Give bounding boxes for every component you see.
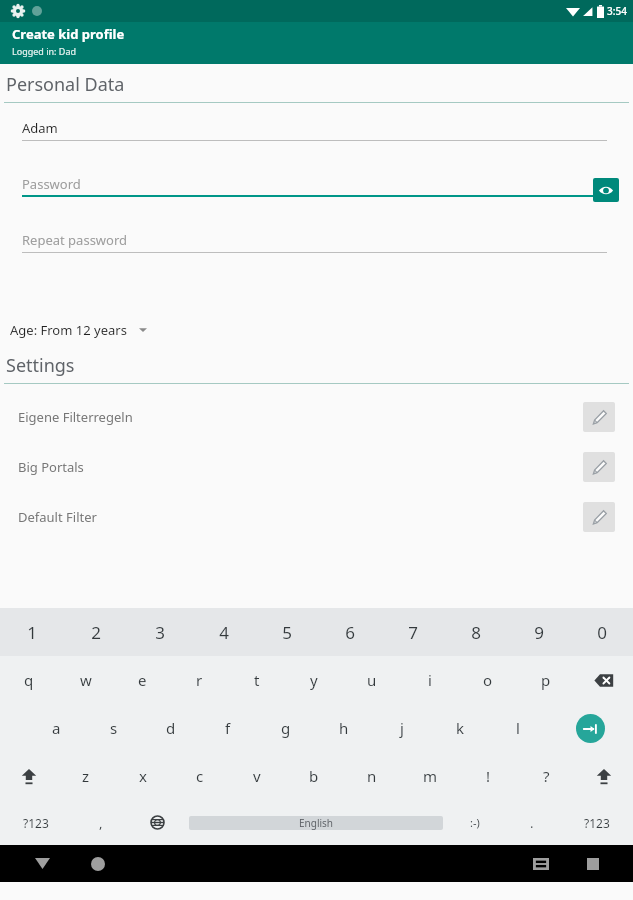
staticText: b <box>309 766 319 786</box>
staticText: u <box>367 670 377 690</box>
button[interactable]: Adam <box>0 123 633 157</box>
button[interactable]: x <box>114 752 171 800</box>
button[interactable]: r <box>171 656 228 704</box>
button[interactable]: n <box>343 752 401 800</box>
staticText: Repeat password <box>22 231 128 249</box>
button[interactable]: Edit Big Portals <box>583 452 615 482</box>
button[interactable]: ?123 <box>560 800 633 845</box>
staticText: y <box>310 670 318 690</box>
staticText: o <box>483 670 493 690</box>
button[interactable]: 4 <box>192 608 255 656</box>
button[interactable]: f <box>199 704 257 752</box>
staticText: n <box>367 766 377 786</box>
button[interactable]: v <box>228 752 285 800</box>
staticText: Password <box>22 175 81 193</box>
button[interactable]: t <box>228 656 285 704</box>
staticText: Create kid profile <box>12 25 125 43</box>
button[interactable]: o <box>459 656 517 704</box>
button[interactable]: e <box>114 656 171 704</box>
button[interactable]: Edit Eigene Filterregeln <box>583 402 615 432</box>
button[interactable]: 1 <box>0 608 64 656</box>
staticText: z <box>82 766 90 786</box>
button[interactable]: Recent apps <box>573 845 613 882</box>
staticText: p <box>541 670 551 690</box>
button[interactable]: Eigene Filterregeln <box>0 400 633 434</box>
button[interactable]: l <box>489 704 547 752</box>
button[interactable]: Shift <box>575 752 633 800</box>
staticText: m <box>423 766 438 786</box>
button[interactable]: 9 <box>507 608 570 656</box>
button[interactable]: q <box>0 656 57 704</box>
staticText: s <box>110 718 118 738</box>
staticText: q <box>24 670 34 690</box>
staticText: t <box>254 670 260 690</box>
button[interactable]: p <box>517 656 575 704</box>
button[interactable]: Shift <box>0 752 57 800</box>
button[interactable]: 2 <box>64 608 128 656</box>
button[interactable]: Keyboard <box>521 845 561 882</box>
staticText: f <box>225 718 231 738</box>
button[interactable]: , <box>72 800 129 845</box>
button[interactable]: j <box>373 704 431 752</box>
button[interactable]: Big Portals <box>0 450 633 484</box>
button[interactable]: d <box>142 704 199 752</box>
button[interactable]: i <box>401 656 459 704</box>
button[interactable]: ? <box>517 752 575 800</box>
staticText: 1 <box>27 621 37 644</box>
button[interactable]: ! <box>459 752 517 800</box>
button[interactable]: 7 <box>381 608 444 656</box>
button[interactable]: Enter <box>547 704 633 752</box>
button[interactable]: English <box>189 816 443 830</box>
button[interactable]: 5 <box>255 608 318 656</box>
staticText: Default Filter <box>18 508 97 526</box>
button[interactable]: g <box>257 704 315 752</box>
button[interactable]: 3 <box>128 608 192 656</box>
button[interactable]: Edit Default Filter <box>583 502 615 532</box>
button[interactable]: Age: From 12 years <box>0 317 633 343</box>
button[interactable]: Back <box>22 845 62 882</box>
staticText: Eigene Filterregeln <box>18 408 133 426</box>
staticText: :-) <box>470 815 480 830</box>
button[interactable]: w <box>57 656 114 704</box>
button[interactable]: a <box>28 704 85 752</box>
button[interactable]: . <box>503 800 560 845</box>
staticText: x <box>139 766 147 786</box>
staticText: h <box>339 718 349 738</box>
staticText: 3 <box>155 621 165 644</box>
button[interactable]: k <box>431 704 489 752</box>
staticText: 2 <box>91 621 101 644</box>
button[interactable]: u <box>343 656 401 704</box>
button[interactable]: c <box>171 752 228 800</box>
button[interactable]: Default Filter <box>0 500 633 534</box>
button[interactable]: s <box>85 704 142 752</box>
button[interactable]: Home <box>78 845 118 882</box>
staticText: w <box>80 670 92 690</box>
staticText: r <box>196 670 203 690</box>
button[interactable]: h <box>315 704 373 752</box>
button[interactable]: m <box>401 752 459 800</box>
staticText: l <box>516 718 520 738</box>
button[interactable]: Change language <box>129 800 186 845</box>
button[interactable]: 0 <box>570 608 633 656</box>
button[interactable]: Show password <box>593 178 619 202</box>
button[interactable]: 8 <box>444 608 507 656</box>
button[interactable]: Backspace <box>575 656 633 704</box>
staticText: Adam <box>22 119 58 137</box>
staticText: Logged in: Dad <box>12 45 76 57</box>
button[interactable]: ?123 <box>0 800 72 845</box>
button[interactable]: b <box>285 752 343 800</box>
staticText: 5 <box>282 621 292 644</box>
staticText: 6 <box>345 621 355 644</box>
staticText: 9 <box>534 621 544 644</box>
staticText: j <box>400 718 404 738</box>
staticText: k <box>456 718 465 738</box>
staticText: e <box>138 670 147 690</box>
staticText: Personal Data <box>6 72 125 97</box>
button[interactable]: z <box>57 752 114 800</box>
staticText: v <box>253 766 261 786</box>
button[interactable]: :-) <box>446 800 503 845</box>
button[interactable]: y <box>285 656 343 704</box>
button[interactable]: Password <box>0 179 633 213</box>
button[interactable]: Repeat password <box>0 235 633 269</box>
button[interactable]: 6 <box>318 608 381 656</box>
